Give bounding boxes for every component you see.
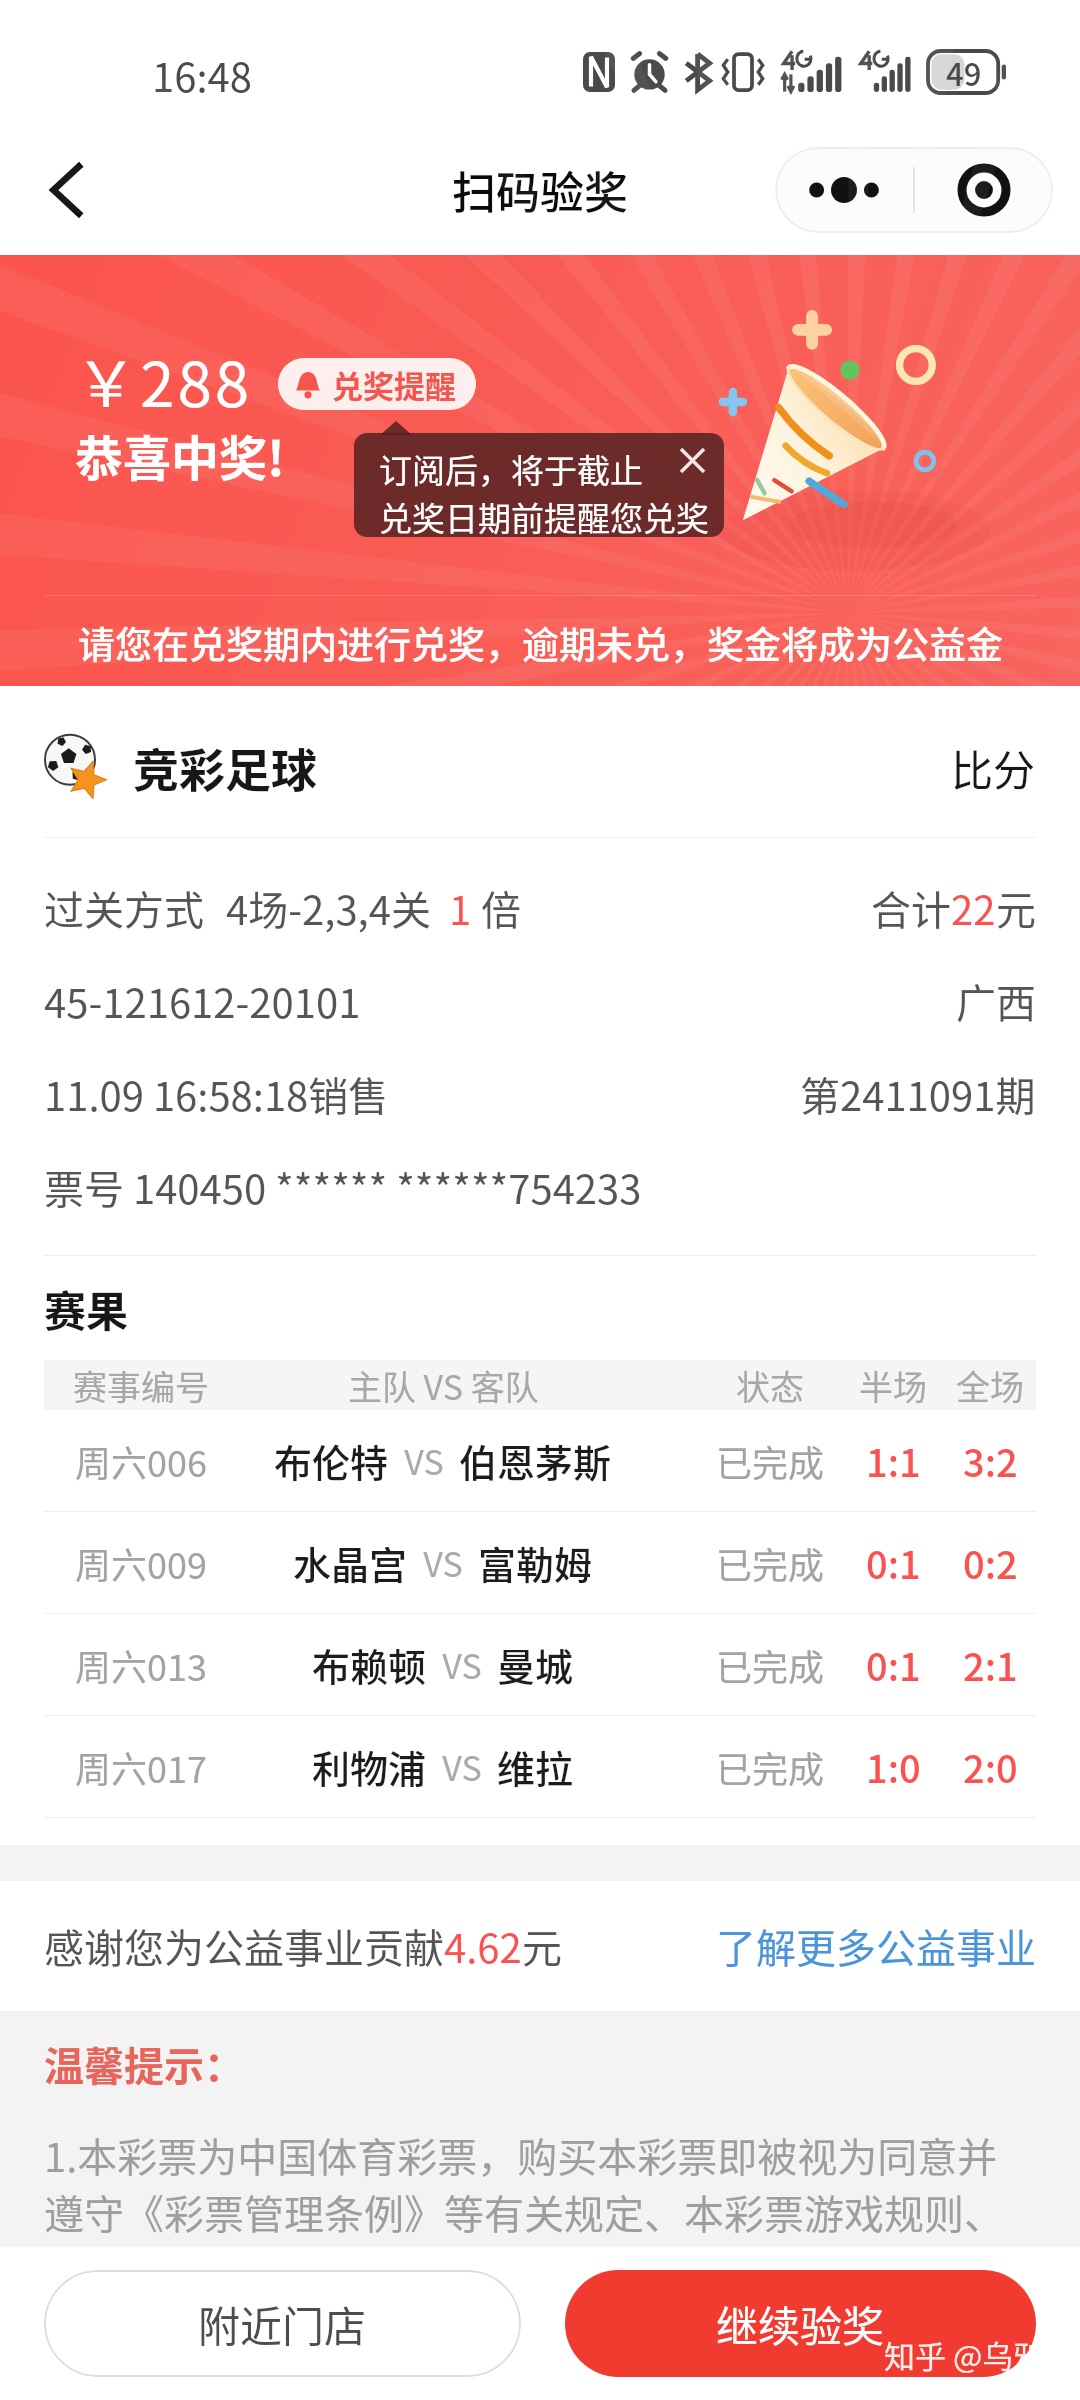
staticText: 附近门店: [198, 2293, 367, 2354]
staticText: 伯恩茅斯: [459, 1433, 612, 1488]
staticText: 半场: [859, 1361, 927, 1410]
staticText: 周六017: [75, 1741, 207, 1793]
staticText: 恭喜中奖!: [75, 420, 285, 490]
staticText: 布赖顿: [312, 1637, 427, 1692]
staticText: 感谢您为公益事业贡献: [44, 1917, 444, 1975]
staticText: 2:1: [963, 1637, 1018, 1692]
button[interactable]: 兑奖提醒: [278, 358, 476, 410]
staticText: 兑奖日期前提醒您兑奖: [379, 493, 709, 537]
staticText: 0:1: [866, 1535, 921, 1590]
button[interactable]: 关闭提示: [669, 437, 715, 483]
button[interactable]: 周六017: [44, 1716, 1036, 1818]
staticText: 22: [951, 879, 996, 937]
staticText: 票号 140450 ****** ******754233: [44, 1158, 642, 1216]
button[interactable]: 继续验奖: [565, 2270, 1036, 2377]
staticText: 已完成: [716, 1741, 825, 1793]
staticText: 49: [946, 50, 982, 92]
button[interactable]: 周六009: [44, 1512, 1036, 1614]
staticText: 富勒姆: [478, 1535, 593, 1590]
staticText: 0:1: [866, 1637, 921, 1692]
staticText: 0:2: [963, 1535, 1018, 1590]
staticText: 已完成: [716, 1435, 825, 1487]
staticText: 3:2: [963, 1433, 1018, 1488]
staticText: 元: [996, 879, 1036, 937]
staticText: 已完成: [716, 1639, 825, 1691]
button[interactable]: 更多: [775, 147, 913, 233]
staticText: 周六013: [75, 1639, 207, 1691]
staticText: 4.62: [444, 1917, 522, 1975]
staticText: 赛事编号: [73, 1361, 209, 1410]
staticText: 已完成: [716, 1537, 825, 1589]
staticText: VS: [408, 1538, 478, 1587]
staticText: 全场: [956, 1361, 1024, 1410]
staticText: VS: [389, 1436, 459, 1485]
staticText: 16:48: [152, 46, 252, 104]
staticText: 元: [522, 1917, 562, 1975]
staticText: VS: [427, 1742, 497, 1791]
staticText: 了解更多公益事业: [716, 1917, 1036, 1975]
staticText: 请您在兑奖期内进行兑奖，逾期未兑，奖金将成为公益金: [78, 616, 1003, 670]
staticText: 利物浦: [312, 1739, 427, 1794]
staticText: 曼城: [497, 1637, 574, 1692]
staticText: 4场-2,3,4关: [226, 879, 431, 937]
staticText: 广西: [956, 972, 1036, 1030]
staticText: 竞彩足球: [133, 734, 317, 801]
button[interactable]: 返回: [22, 145, 112, 235]
staticText: 水晶宫: [293, 1535, 408, 1590]
staticText: 知乎 @乌鸦: [884, 2332, 1045, 2377]
button[interactable]: 关闭小程序: [915, 147, 1053, 233]
staticText: 状态: [736, 1361, 804, 1410]
staticText: 1.本彩票为中国体育彩票，购买本彩票即被视为同意并遵守《彩票管理条例》等有关规定…: [44, 2126, 1036, 2240]
staticText: 合计: [871, 879, 951, 937]
staticText: 倍: [472, 879, 521, 937]
staticText: VS: [427, 1640, 497, 1689]
staticText: 过关方式: [44, 879, 204, 937]
staticText: 主队 VS 客队: [348, 1361, 539, 1410]
staticText: 布伦特: [274, 1433, 389, 1488]
staticText: 兑奖提醒: [332, 362, 456, 407]
staticText: 扫码验奖: [452, 158, 628, 222]
staticText: 11.09 16:58:18销售: [44, 1065, 389, 1123]
staticText: 1:0: [866, 1739, 921, 1794]
button[interactable]: 周六013: [44, 1614, 1036, 1716]
staticText: 周六009: [75, 1537, 207, 1589]
staticText: 订阅后，将于截止: [379, 445, 643, 493]
staticText: 周六006: [75, 1435, 207, 1487]
staticText: 2:0: [963, 1739, 1018, 1794]
staticText: 45-121612-20101: [44, 972, 361, 1030]
staticText: ￥288: [75, 335, 253, 425]
staticText: 继续验奖: [716, 2293, 885, 2354]
staticText: 1:1: [866, 1433, 921, 1488]
button[interactable]: 附近门店: [44, 2270, 521, 2377]
staticText: 第2411091期: [800, 1065, 1036, 1123]
button[interactable]: 周六006: [44, 1410, 1036, 1512]
staticText: 1: [449, 879, 472, 937]
staticText: 赛果: [44, 1278, 1036, 1339]
staticText: 温馨提示：: [44, 2035, 244, 2093]
staticText: 维拉: [497, 1739, 574, 1794]
button[interactable]: 了解更多公益事业: [716, 1917, 1036, 1975]
staticText: 比分: [951, 737, 1036, 798]
